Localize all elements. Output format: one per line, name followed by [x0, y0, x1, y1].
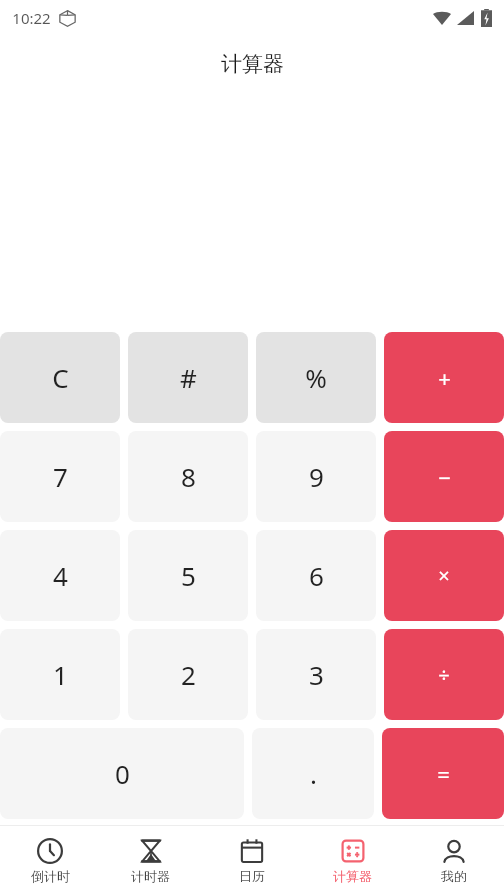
button[interactable]: . [252, 728, 374, 819]
staticText: 3 [309, 657, 324, 692]
button[interactable]: % [256, 332, 376, 423]
staticText: 计时器 [131, 868, 170, 884]
button[interactable]: = [382, 728, 504, 819]
button[interactable]: 倒计时 [0, 826, 100, 896]
staticText: ÷ [438, 661, 450, 688]
button[interactable]: 计算器 [302, 826, 403, 896]
staticText: . [310, 756, 317, 791]
staticText: # [180, 360, 197, 395]
staticText: 8 [181, 459, 196, 494]
staticText: 5 [181, 558, 196, 593]
button[interactable]: 0 [0, 728, 244, 819]
staticText: 倒计时 [31, 868, 70, 884]
staticText: − [438, 462, 451, 492]
staticText: 4 [53, 558, 68, 593]
button[interactable]: 2 [128, 629, 248, 720]
button[interactable]: 日历 [201, 826, 302, 896]
button[interactable]: − [384, 431, 504, 522]
staticText: 2 [181, 657, 196, 692]
button[interactable]: 6 [256, 530, 376, 621]
staticText: 计算器 [333, 868, 372, 884]
button[interactable]: # [128, 332, 248, 423]
staticText: 日历 [239, 868, 265, 884]
staticText: 9 [309, 459, 324, 494]
staticText: % [305, 360, 327, 395]
staticText: 1 [53, 657, 68, 692]
button[interactable]: 计时器 [100, 826, 201, 896]
staticText: C [52, 360, 69, 395]
staticText: 计算器 [221, 51, 284, 77]
button[interactable]: 4 [0, 530, 120, 621]
staticText: 我的 [441, 868, 467, 884]
button[interactable]: 我的 [403, 826, 504, 896]
button[interactable]: 5 [128, 530, 248, 621]
button[interactable]: ÷ [384, 629, 504, 720]
staticText: × [438, 562, 450, 589]
button[interactable]: 8 [128, 431, 248, 522]
staticText: + [438, 363, 451, 393]
staticText: 10:22 [12, 8, 51, 28]
staticText: 7 [53, 459, 68, 494]
staticText: 6 [309, 558, 324, 593]
button[interactable]: 7 [0, 431, 120, 522]
button[interactable]: × [384, 530, 504, 621]
button[interactable]: 1 [0, 629, 120, 720]
staticText: = [437, 759, 450, 789]
button[interactable]: C [0, 332, 120, 423]
staticText: 0 [115, 756, 130, 791]
button[interactable]: + [384, 332, 504, 423]
button[interactable]: 3 [256, 629, 376, 720]
button[interactable]: 9 [256, 431, 376, 522]
